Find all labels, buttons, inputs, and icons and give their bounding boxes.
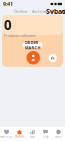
staticText: Svbado	[46, 7, 65, 16]
staticText: Orders	[15, 135, 24, 138]
staticText: 0	[4, 16, 12, 34]
button[interactable]: Stats	[26, 127, 39, 141]
staticText: Chat	[42, 135, 48, 138]
staticText: Stats	[30, 135, 35, 138]
button[interactable]: Chat	[39, 127, 52, 141]
staticText: Online · Auto accept	[14, 8, 55, 14]
button[interactable]: Support	[12, 9, 16, 14]
button[interactable]: Support chat	[49, 54, 57, 62]
staticText: 9:41	[3, 0, 13, 8]
staticText: Favourites	[0, 135, 13, 138]
button[interactable]: More	[52, 127, 65, 141]
button[interactable]: Favourites	[0, 127, 13, 141]
button[interactable]: Profile	[26, 51, 40, 64]
staticText: Products collected	[4, 33, 35, 38]
staticText: ORDER SEARCH	[24, 40, 40, 50]
button[interactable]: Orders	[13, 127, 26, 141]
staticText: More	[55, 135, 62, 138]
button[interactable]: ORDER SEARCH	[22, 42, 42, 47]
button[interactable]: Menu	[12, 10, 15, 13]
